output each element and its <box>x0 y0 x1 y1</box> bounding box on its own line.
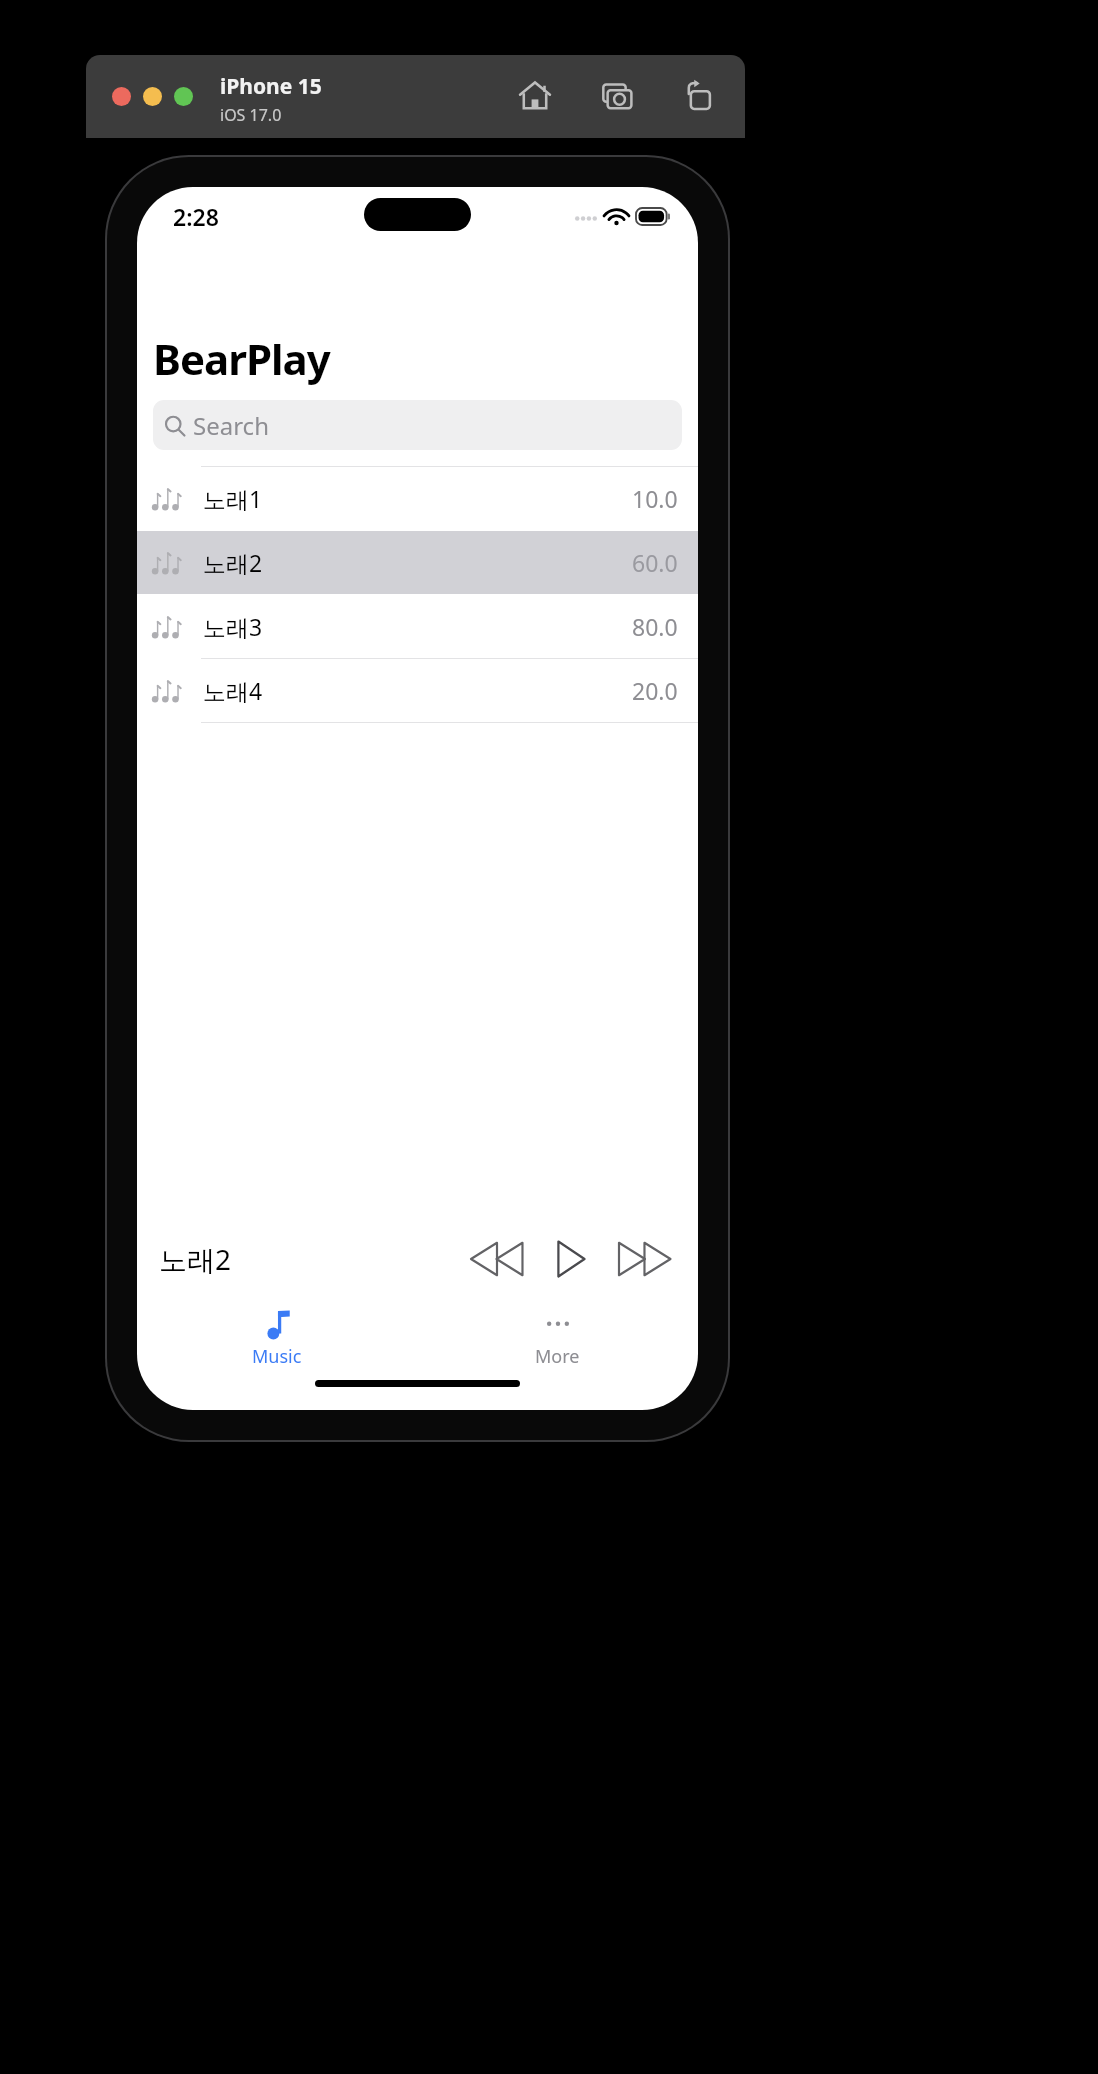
staticText: 노래3 <box>203 611 263 642</box>
staticText: 노래4 <box>203 675 263 706</box>
staticText: BearPlay <box>153 330 330 387</box>
button[interactable]: 노래4 <box>137 659 698 722</box>
button[interactable]: Home <box>512 73 558 119</box>
button[interactable]: Play <box>540 1228 602 1290</box>
button[interactable] <box>112 87 131 106</box>
button[interactable]: Next <box>614 1228 676 1290</box>
staticText: 20.0 <box>632 675 678 706</box>
staticText: Search <box>193 409 269 442</box>
button[interactable]: Previous <box>466 1228 528 1290</box>
staticText: 10.0 <box>632 483 678 514</box>
button[interactable]: Screenshot <box>594 73 640 119</box>
staticText: 60.0 <box>632 547 678 578</box>
button[interactable]: 노래2 <box>137 531 698 594</box>
staticText: iPhone 15 <box>220 72 322 101</box>
button[interactable]: Rotate <box>676 73 722 119</box>
button[interactable]: 노래1 <box>137 467 698 530</box>
button[interactable]: Search <box>153 400 682 450</box>
staticText: 2:28 <box>173 201 219 232</box>
staticText: 노래2 <box>203 547 263 578</box>
staticText: Music <box>252 1344 302 1369</box>
staticText: 노래1 <box>203 483 263 514</box>
button[interactable] <box>143 87 162 106</box>
staticText: 노래2 <box>159 1240 232 1278</box>
staticText: iOS 17.0 <box>220 104 282 126</box>
button[interactable]: Music <box>252 1310 302 1369</box>
button[interactable]: More <box>535 1310 580 1369</box>
button[interactable]: 노래3 <box>137 595 698 658</box>
staticText: 80.0 <box>632 611 678 642</box>
staticText: More <box>535 1344 580 1369</box>
button[interactable] <box>174 87 193 106</box>
